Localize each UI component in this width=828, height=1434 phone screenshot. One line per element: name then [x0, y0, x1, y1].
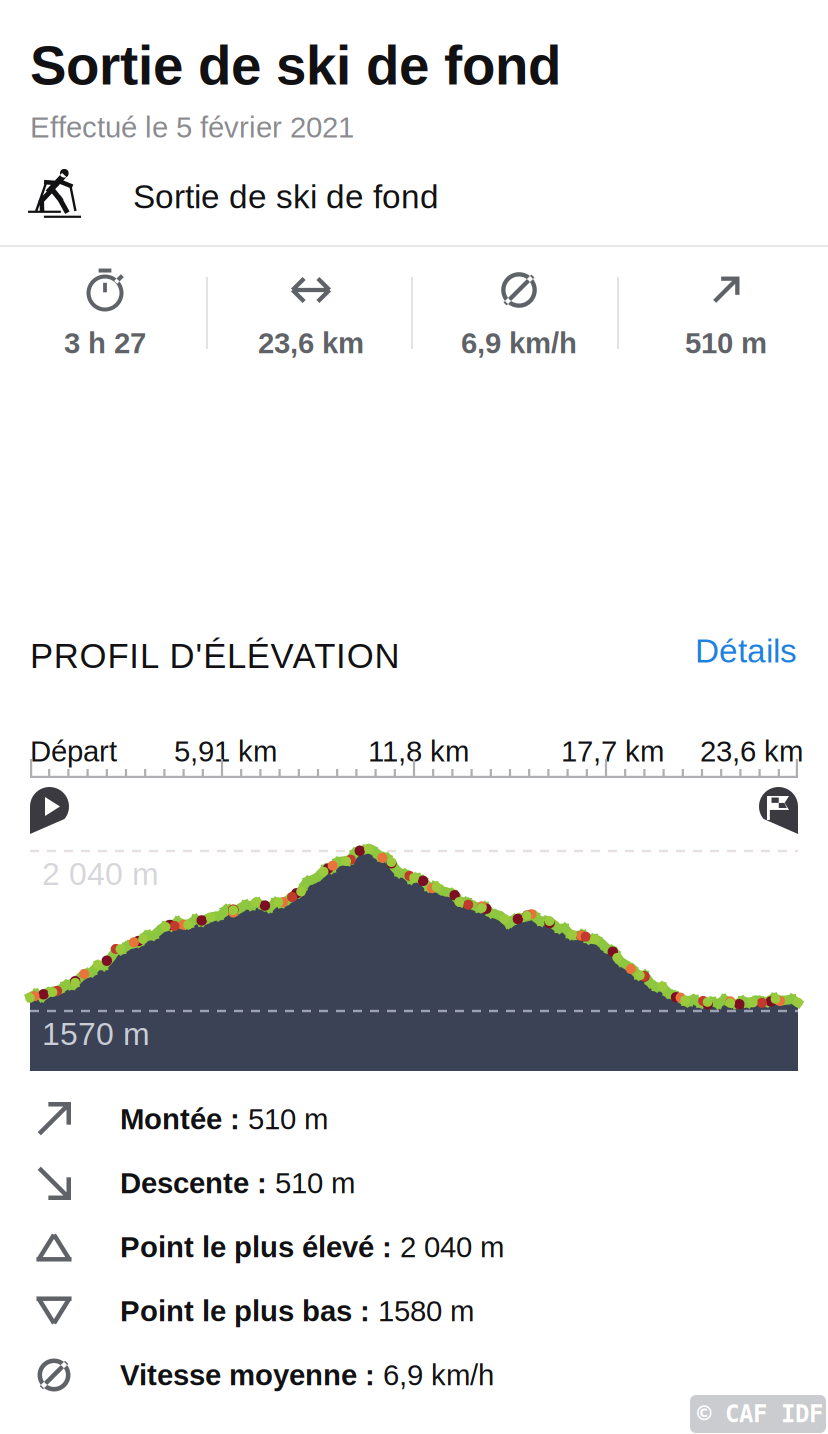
- button[interactable]: Détails: [637, 626, 797, 676]
- staticText: 5,91 km: [174, 735, 277, 768]
- staticText: 6,9 km/h: [383, 1359, 494, 1391]
- staticText: Détails: [695, 632, 797, 670]
- staticText: Montée :: [120, 1103, 240, 1135]
- staticText: 3 h 27: [64, 327, 146, 359]
- button[interactable]: Descente :: [0, 1151, 828, 1215]
- button[interactable]: Montée :: [0, 1087, 828, 1151]
- staticText: Sortie de ski de fond: [133, 178, 439, 215]
- button[interactable]: 510 m: [631, 268, 821, 364]
- staticText: 6,9 km/h: [461, 327, 577, 359]
- staticText: 1570 m: [42, 1016, 150, 1052]
- staticText: 510 m: [248, 1103, 328, 1135]
- staticText: 2 040 m: [400, 1231, 504, 1263]
- staticText: Descente :: [120, 1167, 267, 1199]
- staticText: PROFIL D'ÉLÉVATION: [30, 637, 400, 675]
- button[interactable]: Vitesse moyenne :: [0, 1343, 828, 1407]
- button[interactable]: Point le plus bas :: [0, 1279, 828, 1343]
- staticText: 2 040 m: [42, 856, 159, 892]
- staticText: © CAF IDF: [697, 1400, 823, 1428]
- staticText: Vitesse moyenne :: [120, 1359, 375, 1391]
- staticText: Sortie de ski de fond: [30, 35, 561, 96]
- staticText: Départ: [30, 735, 117, 768]
- staticText: 17,7 km: [561, 735, 664, 768]
- staticText: 510 m: [685, 327, 767, 359]
- button[interactable]: Point le plus élevé :: [0, 1215, 828, 1279]
- button[interactable]: 3 h 27: [10, 268, 200, 364]
- button[interactable]: 23,6 km: [216, 268, 406, 364]
- staticText: 23,6 km: [700, 735, 803, 768]
- staticText: Point le plus bas :: [120, 1295, 370, 1327]
- button[interactable]: 6,9 km/h: [424, 268, 614, 364]
- staticText: 23,6 km: [258, 327, 364, 359]
- staticText: Point le plus élevé :: [120, 1231, 392, 1263]
- staticText: 510 m: [275, 1167, 355, 1199]
- staticText: 11,8 km: [368, 735, 469, 768]
- staticText: 1580 m: [378, 1295, 474, 1327]
- staticText: Effectué le 5 février 2021: [30, 111, 354, 144]
